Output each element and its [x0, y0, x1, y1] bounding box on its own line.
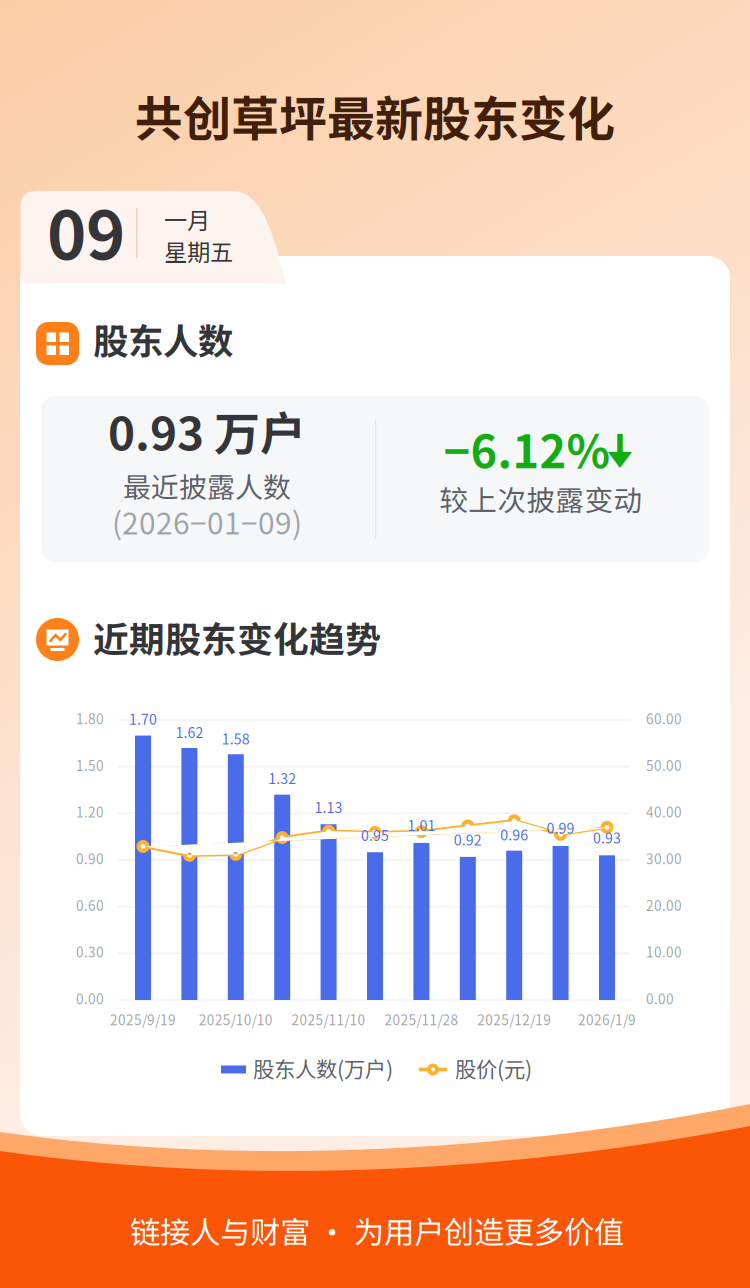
staticText: −6.12% — [443, 416, 610, 481]
staticText: 2026/1/9 — [578, 1009, 636, 1029]
staticText: 股价(元) — [455, 1052, 532, 1083]
staticText: 1.32 — [268, 768, 296, 788]
staticText: 1.62 — [175, 722, 203, 742]
staticText: 09 — [47, 182, 125, 279]
staticText: 近期股东变化趋势 — [93, 611, 381, 663]
staticText: 星期五 — [164, 234, 233, 268]
staticText: 2025/12/19 — [477, 1009, 551, 1029]
staticText: 1.80 — [76, 708, 104, 728]
staticText: 10.00 — [646, 942, 682, 961]
staticText: 40.00 — [646, 802, 682, 821]
staticText: (2026−01−09) — [112, 500, 302, 543]
staticText: 股东人数 — [93, 313, 233, 365]
staticText: 1.01 — [407, 815, 435, 835]
staticText: 0.96 — [500, 824, 528, 845]
staticText: 30.00 — [646, 848, 682, 868]
staticText: 2025/11/10 — [292, 1009, 366, 1029]
staticText: 0.95 — [361, 825, 389, 845]
staticText: 1.70 — [129, 708, 157, 729]
staticText: 0.99 — [547, 817, 575, 838]
staticText: 2025/9/19 — [110, 1009, 176, 1029]
staticText: 较上次披露变动 — [439, 478, 642, 519]
staticText: 0.60 — [76, 895, 104, 915]
staticText: 0.00 — [76, 988, 104, 1008]
staticText: 20.00 — [646, 895, 682, 915]
staticText: 1.20 — [76, 802, 104, 821]
staticText: 2025/11/28 — [384, 1009, 458, 1029]
staticText: 0.90 — [76, 848, 104, 868]
staticText: 2025/10/10 — [199, 1009, 273, 1029]
staticText: 股东人数(万户) — [253, 1052, 393, 1083]
staticText: 0.93 万户 — [108, 397, 306, 464]
staticText: 0.00 — [646, 988, 674, 1008]
staticText: 0.93 — [593, 827, 621, 847]
staticText: 一月 — [164, 202, 210, 236]
staticText: 60.00 — [646, 708, 682, 728]
staticText: 0.92 — [454, 829, 482, 849]
staticText: 50.00 — [646, 755, 682, 775]
staticText: 1.58 — [222, 728, 250, 748]
staticText: 1.50 — [76, 755, 104, 775]
staticText: 0.30 — [76, 942, 104, 961]
staticText: 共创草坪最新股东变化 — [135, 81, 615, 150]
staticText: 链接人与财富 · 为用户创造更多价值 — [130, 1208, 624, 1252]
staticText: 最近披露人数 — [123, 465, 291, 506]
staticText: 1.13 — [315, 797, 343, 817]
